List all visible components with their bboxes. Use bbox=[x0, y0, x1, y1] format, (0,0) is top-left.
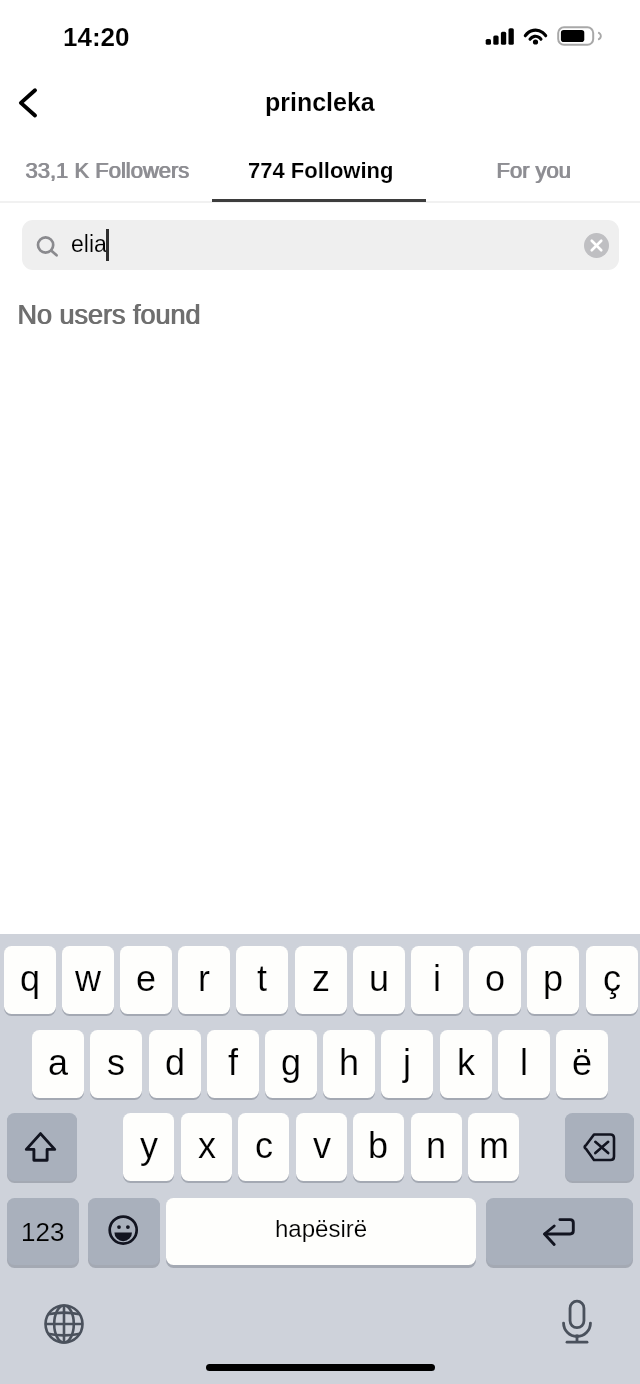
staticText: r bbox=[198, 958, 210, 998]
button[interactable]: n bbox=[411, 1113, 462, 1181]
button[interactable]: Shift bbox=[7, 1113, 77, 1181]
button[interactable]: hapësirë bbox=[166, 1198, 476, 1265]
staticText: o bbox=[485, 958, 506, 998]
button[interactable]: b bbox=[353, 1113, 404, 1181]
button[interactable]: 123 bbox=[7, 1198, 79, 1265]
staticText: j bbox=[403, 1042, 411, 1082]
staticText: 33,1 K Followers bbox=[25, 158, 189, 183]
button[interactable]: a bbox=[32, 1030, 84, 1098]
staticText: c bbox=[255, 1125, 273, 1165]
button[interactable]: Emoji keyboard bbox=[88, 1198, 160, 1265]
button[interactable]: s bbox=[90, 1030, 142, 1098]
staticText: p bbox=[543, 958, 564, 998]
button[interactable]: Dictation bbox=[557, 1299, 597, 1347]
button[interactable]: z bbox=[295, 946, 347, 1014]
staticText: ç bbox=[603, 958, 621, 998]
staticText: g bbox=[281, 1042, 302, 1082]
button[interactable]: o bbox=[469, 946, 521, 1014]
staticText: 774 Following bbox=[248, 158, 394, 183]
staticText: No users found bbox=[17, 300, 201, 330]
staticText: f bbox=[228, 1042, 239, 1082]
staticText: s bbox=[107, 1042, 125, 1082]
button[interactable]: p bbox=[527, 946, 579, 1014]
staticText: 123 bbox=[21, 1217, 65, 1246]
button[interactable]: 774 Following bbox=[214, 150, 427, 190]
staticText: h bbox=[339, 1042, 360, 1082]
button[interactable]: v bbox=[296, 1113, 347, 1181]
button[interactable]: k bbox=[440, 1030, 492, 1098]
staticText: w bbox=[75, 958, 101, 998]
staticText: q bbox=[20, 958, 41, 998]
button[interactable]: q bbox=[4, 946, 56, 1014]
button[interactable]: j bbox=[381, 1030, 433, 1098]
button[interactable]: y bbox=[123, 1113, 174, 1181]
staticText: e bbox=[136, 958, 157, 998]
button[interactable]: l bbox=[498, 1030, 550, 1098]
staticText: For you bbox=[497, 158, 572, 183]
staticText: m bbox=[479, 1125, 509, 1165]
staticText: x bbox=[198, 1125, 216, 1165]
button[interactable]: 33,1 K Followers bbox=[0, 150, 214, 190]
staticText: 14:20 bbox=[63, 22, 130, 51]
button[interactable]: ë bbox=[556, 1030, 608, 1098]
staticText: ë bbox=[572, 1042, 593, 1082]
staticText: u bbox=[369, 958, 390, 998]
button[interactable]: Back bbox=[0, 72, 62, 134]
button[interactable]: c bbox=[238, 1113, 289, 1181]
staticText: No users found bbox=[18, 300, 202, 330]
staticText: b bbox=[368, 1125, 389, 1165]
button[interactable]: Switch keyboard bbox=[44, 1304, 84, 1344]
button[interactable]: m bbox=[468, 1113, 519, 1181]
button[interactable]: r bbox=[178, 946, 230, 1014]
button[interactable]: Clear text bbox=[584, 233, 609, 258]
button[interactable]: For you bbox=[427, 150, 640, 190]
staticText: t bbox=[257, 958, 268, 998]
button[interactable]: x bbox=[181, 1113, 232, 1181]
button[interactable]: f bbox=[207, 1030, 259, 1098]
staticText: k bbox=[457, 1042, 475, 1082]
staticText: d bbox=[165, 1042, 186, 1082]
button[interactable]: u bbox=[353, 946, 405, 1014]
button[interactable]: elia bbox=[22, 220, 619, 270]
button[interactable]: h bbox=[323, 1030, 375, 1098]
staticText: i bbox=[433, 958, 441, 998]
staticText: v bbox=[313, 1125, 331, 1165]
staticText: a bbox=[48, 1042, 69, 1082]
button[interactable]: Backspace bbox=[565, 1113, 634, 1181]
button[interactable]: i bbox=[411, 946, 463, 1014]
staticText: l bbox=[520, 1042, 528, 1082]
button[interactable]: d bbox=[149, 1030, 201, 1098]
button[interactable]: g bbox=[265, 1030, 317, 1098]
staticText: hapësirë bbox=[275, 1215, 368, 1242]
button[interactable]: w bbox=[62, 946, 114, 1014]
button[interactable]: t bbox=[236, 946, 288, 1014]
staticText: elia bbox=[71, 231, 107, 257]
button[interactable]: ç bbox=[586, 946, 638, 1014]
staticText: For you bbox=[496, 158, 571, 183]
button[interactable]: e bbox=[120, 946, 172, 1014]
staticText: 33,1 K Followers bbox=[26, 158, 190, 183]
staticText: n bbox=[426, 1125, 447, 1165]
button[interactable]: Return bbox=[486, 1198, 633, 1265]
staticText: z bbox=[312, 958, 330, 998]
staticText: princleka bbox=[265, 88, 375, 116]
staticText: y bbox=[140, 1125, 158, 1165]
